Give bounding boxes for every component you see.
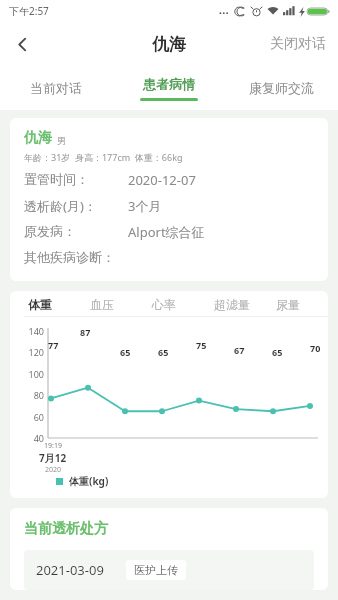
staticText: 下午2:57 — [9, 4, 49, 18]
staticText: 2021-03-09 — [36, 561, 104, 579]
staticText: 67 — [234, 344, 245, 356]
staticText: 血压 — [90, 297, 114, 312]
staticText: 男 — [57, 135, 66, 146]
staticText: 透析龄(月)： — [24, 197, 97, 215]
staticText: 19:19 — [44, 441, 62, 451]
staticText: 100 — [20, 368, 44, 380]
button[interactable]: 关闭对话 — [258, 22, 338, 66]
button[interactable]: 患者病情 — [112, 66, 225, 110]
button[interactable]: 尿量 — [276, 291, 328, 317]
staticText: 140 — [20, 325, 44, 337]
button[interactable]: 当前透析处方 — [10, 508, 328, 590]
button[interactable]: 仇海 — [10, 118, 328, 281]
staticText: 7月12 — [39, 451, 67, 465]
staticText: 医护上传 — [134, 563, 178, 577]
staticText: 2020 — [45, 465, 62, 475]
staticText: 120 — [20, 346, 44, 358]
staticText: 仇海 — [24, 129, 52, 147]
staticText: 70 — [310, 342, 321, 354]
staticText: 年龄：31岁 身高：177cm 体重：66kg — [24, 151, 183, 163]
staticText: 2020-12-07 — [128, 171, 196, 189]
button[interactable]: 心率 — [152, 291, 214, 317]
staticText: 当前透析处方 — [24, 520, 108, 538]
staticText: 体重 — [28, 297, 52, 312]
staticText: 患者病情 — [143, 76, 195, 92]
staticText: 其他疾病诊断： — [24, 249, 115, 265]
staticText: 65 — [272, 346, 283, 358]
staticText: 康复师交流 — [249, 80, 314, 96]
staticText: 关闭对话 — [270, 35, 326, 53]
staticText: Alport综合征 — [128, 223, 205, 241]
staticText: 75 — [196, 339, 207, 351]
staticText: 置管时间： — [24, 171, 89, 187]
button[interactable]: 当前对话 — [0, 66, 112, 110]
button[interactable]: 血压 — [90, 291, 152, 317]
staticText: 40 — [20, 432, 44, 444]
button[interactable]: Back — [0, 22, 44, 66]
staticText: 尿量 — [276, 297, 300, 312]
staticText: 心率 — [152, 297, 176, 312]
staticText: 3个月 — [128, 197, 162, 215]
staticText: 原发病： — [24, 223, 76, 239]
staticText: 超滤量 — [214, 297, 250, 312]
button[interactable]: 超滤量 — [214, 291, 276, 317]
staticText: 60 — [20, 411, 44, 423]
staticText: 87 — [80, 326, 91, 338]
button[interactable]: 康复师交流 — [225, 66, 338, 110]
staticText: 当前对话 — [30, 80, 82, 96]
staticText: 65 — [120, 346, 131, 358]
staticText: 80 — [20, 389, 44, 401]
staticText: 65 — [158, 346, 169, 358]
staticText: 77 — [48, 339, 59, 351]
button[interactable]: 体重 — [28, 291, 90, 317]
staticText: 体重(kg) — [69, 474, 109, 488]
staticText: 仇海 — [152, 34, 186, 55]
